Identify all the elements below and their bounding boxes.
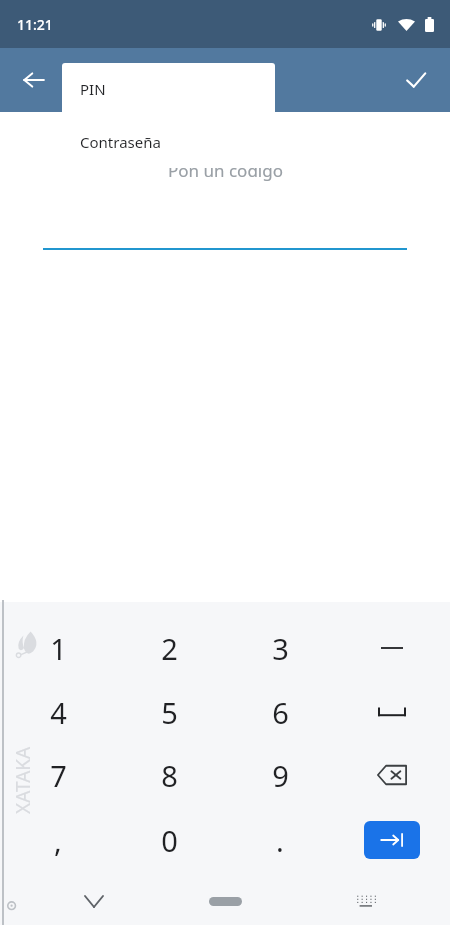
staticText: 1	[50, 629, 67, 668]
button[interactable]: Confirm	[392, 56, 440, 104]
button[interactable]: 5	[121, 683, 217, 741]
staticText: 8	[161, 756, 178, 795]
staticText: 5	[161, 693, 178, 732]
button[interactable]: Enter	[364, 821, 420, 859]
staticText: ,	[54, 821, 62, 860]
staticText: 4	[50, 693, 67, 732]
button[interactable]: .	[232, 811, 328, 869]
button[interactable]: Space	[344, 683, 440, 741]
button[interactable]: Switch keyboard	[344, 879, 388, 923]
button[interactable]: 8	[121, 746, 217, 804]
button[interactable]: Back	[10, 56, 58, 104]
staticText: Contraseña	[80, 132, 161, 152]
button[interactable]: Contraseña	[62, 115, 275, 168]
staticText: 2	[161, 629, 178, 668]
button[interactable]: Minus	[344, 619, 440, 677]
staticText: Pon un código	[168, 159, 283, 182]
button[interactable]: 6	[232, 683, 328, 741]
button[interactable]: Backspace	[344, 746, 440, 804]
button[interactable]: 0	[121, 811, 217, 869]
staticText: PIN	[80, 79, 106, 99]
button[interactable]: 7	[10, 746, 106, 804]
button[interactable]: ,	[10, 811, 106, 869]
button[interactable]: Home	[177, 884, 273, 918]
staticText: 7	[50, 756, 67, 795]
button[interactable]: Hide keyboard	[72, 879, 116, 923]
button[interactable]: PIN	[62, 63, 275, 115]
button[interactable]: 2	[121, 619, 217, 677]
button[interactable]: 4	[10, 683, 106, 741]
button[interactable]: 9	[232, 746, 328, 804]
staticText: 11:21	[17, 15, 53, 34]
staticText: 3	[272, 629, 289, 668]
staticText: 0	[161, 821, 178, 860]
staticText: 9	[272, 756, 289, 795]
staticText: XATAKA BASICS	[10, 694, 34, 814]
button[interactable]: 1	[10, 619, 106, 677]
staticText: 6	[272, 693, 289, 732]
button[interactable]: 3	[232, 619, 328, 677]
staticText: .	[276, 821, 284, 860]
